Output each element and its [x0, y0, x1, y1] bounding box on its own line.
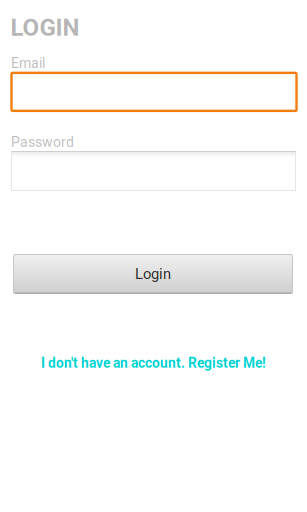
- staticText: I don't have an account. Register Me!: [41, 355, 266, 371]
- staticText: Login: [135, 265, 171, 283]
- button[interactable]: Email: [11, 72, 296, 112]
- button[interactable]: Password: [11, 151, 296, 191]
- staticText: Password: [11, 134, 74, 150]
- button[interactable]: I don't have an account. Register Me!: [0, 352, 307, 374]
- staticText: Email: [11, 55, 45, 71]
- staticText: LOGIN: [10, 13, 79, 42]
- button[interactable]: Login: [13, 254, 293, 294]
